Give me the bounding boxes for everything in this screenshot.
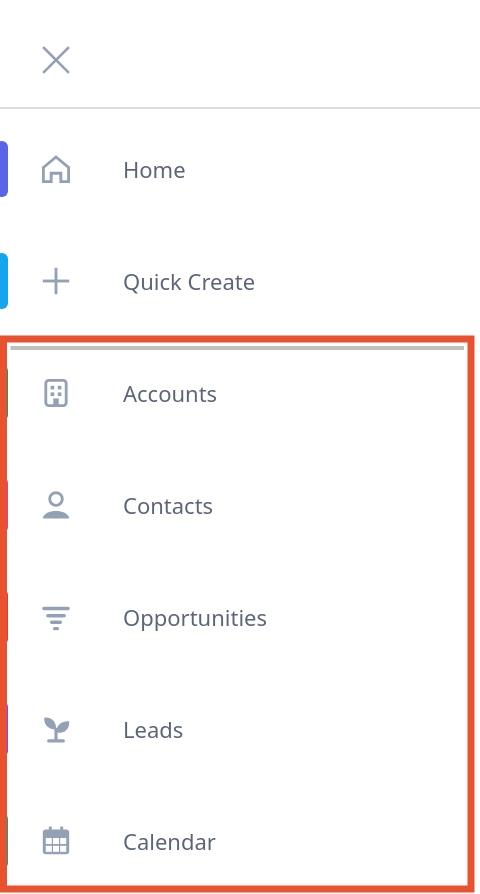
button[interactable]: Opportunities <box>0 577 480 657</box>
staticText: Home <box>123 154 186 184</box>
button[interactable]: Contacts <box>0 465 480 545</box>
button[interactable]: Quick Create <box>0 241 480 321</box>
button[interactable]: Close <box>28 32 84 88</box>
button[interactable]: Calendar <box>0 801 480 881</box>
button[interactable]: Accounts <box>0 353 480 433</box>
staticText: Leads <box>123 714 184 744</box>
staticText: Accounts <box>123 378 218 408</box>
staticText: Opportunities <box>123 602 268 632</box>
button[interactable]: Leads <box>0 689 480 769</box>
button[interactable]: Home <box>0 129 480 209</box>
staticText: Calendar <box>123 826 216 856</box>
staticText: Contacts <box>123 490 214 520</box>
staticText: Quick Create <box>123 266 256 296</box>
